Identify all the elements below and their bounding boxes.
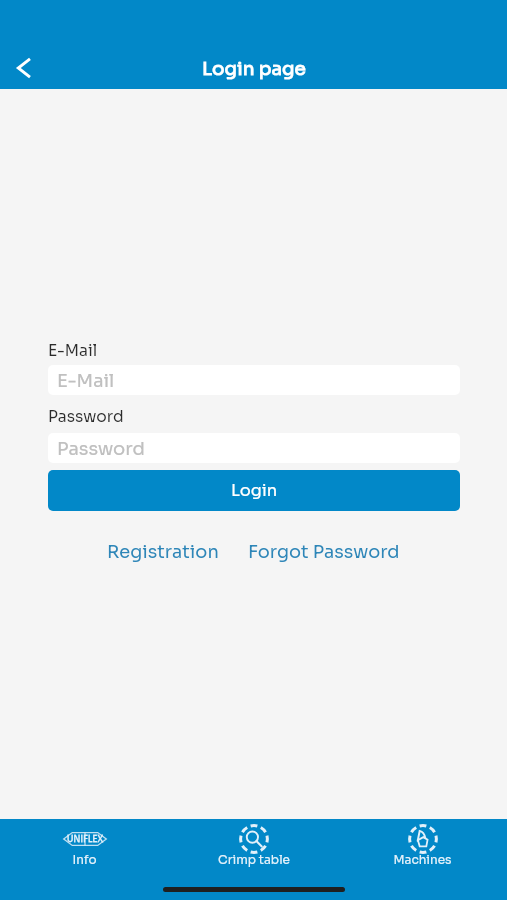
button[interactable]: Login — [48, 470, 460, 511]
staticText: Login page — [202, 57, 306, 80]
staticText: E-Mail — [48, 341, 98, 361]
staticText: Crimp table — [218, 852, 290, 867]
staticText: Login — [231, 480, 278, 501]
staticText: UNIFLEX — [67, 834, 104, 844]
button[interactable]: Back — [1, 45, 47, 91]
button[interactable]: Registration — [107, 541, 219, 563]
staticText: Password — [57, 438, 145, 461]
button[interactable]: Password — [48, 433, 460, 463]
button[interactable]: UNIFLEX — [0, 819, 169, 868]
button[interactable]: Machines — [338, 819, 507, 868]
button[interactable]: Crimp table — [169, 819, 338, 868]
staticText: Password — [48, 407, 124, 427]
button[interactable]: E-Mail — [48, 365, 460, 395]
button[interactable]: Forgot Password — [248, 541, 400, 563]
staticText: Info — [72, 852, 97, 867]
staticText: E-Mail — [57, 370, 115, 393]
staticText: Machines — [393, 852, 452, 867]
